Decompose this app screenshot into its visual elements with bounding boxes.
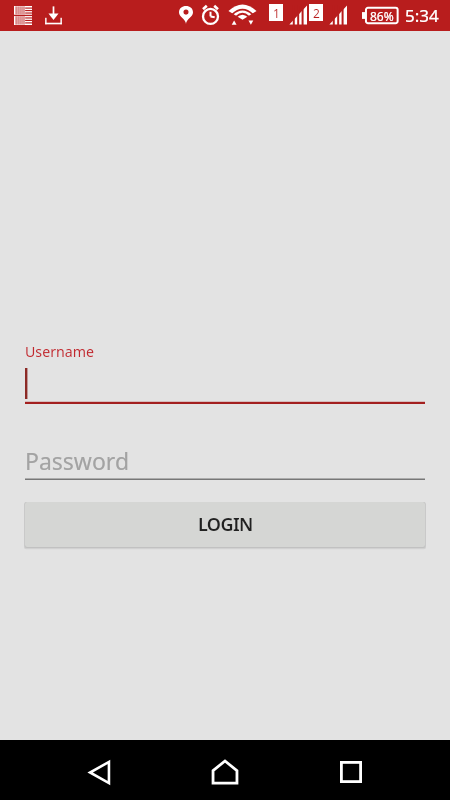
button[interactable]: Home <box>198 745 252 799</box>
staticText: 5:34 <box>405 4 439 27</box>
button[interactable]: LOGIN <box>25 502 425 547</box>
staticText: LOGIN <box>198 512 253 537</box>
staticText: Password <box>25 445 130 476</box>
button[interactable]: Username field <box>25 366 425 404</box>
button[interactable]: Back <box>72 745 126 799</box>
staticText: 86% <box>370 8 394 24</box>
button[interactable]: Password field <box>25 443 425 480</box>
staticText: Username <box>25 342 95 361</box>
button[interactable]: Recent apps <box>324 745 378 799</box>
staticText: 2 <box>313 5 320 21</box>
staticText: 1 <box>273 5 280 21</box>
